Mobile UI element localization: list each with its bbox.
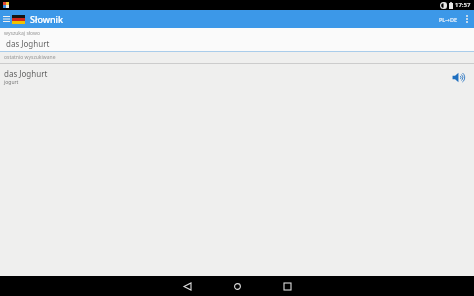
- button[interactable]: PL→DE: [435, 10, 461, 28]
- staticText: Słownik: [30, 13, 64, 25]
- button[interactable]: Open navigation menu: [1, 10, 11, 28]
- staticText: 17:57: [455, 1, 471, 9]
- button[interactable]: More options: [461, 10, 473, 28]
- button[interactable]: Home: [212, 276, 262, 296]
- staticText: ostatnio wyszukiwane: [4, 54, 56, 61]
- staticText: wyszukaj słowo: [4, 30, 40, 37]
- staticText: das Joghurt: [6, 38, 50, 49]
- staticText: das Joghurt: [4, 68, 48, 79]
- button[interactable]: das Joghurt: [0, 64, 474, 90]
- button[interactable]: wyszukaj słowo: [0, 28, 474, 52]
- button[interactable]: Play pronunciation: [449, 67, 469, 87]
- button[interactable]: Back: [162, 276, 212, 296]
- staticText: jogurt: [4, 79, 19, 86]
- staticText: PL→DE: [439, 16, 457, 23]
- button[interactable]: Source language German: [11, 13, 26, 25]
- button[interactable]: Recent apps: [262, 276, 312, 296]
